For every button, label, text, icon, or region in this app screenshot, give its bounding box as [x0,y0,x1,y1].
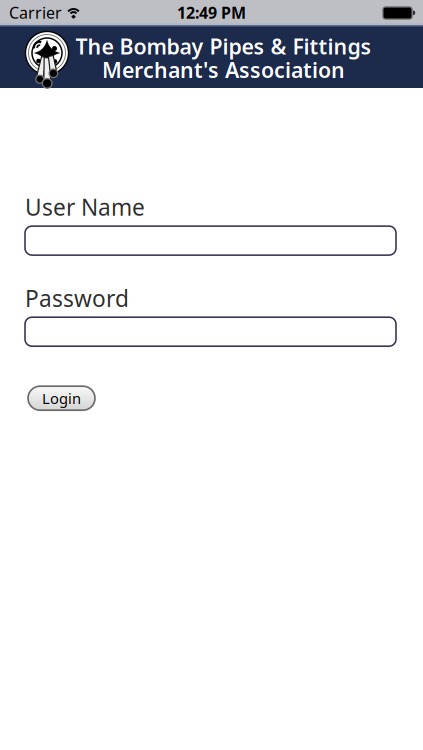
staticText: Carrier [9,2,62,23]
staticText: Password [25,283,129,313]
staticText: 12:49 PM [177,2,246,23]
staticText: Login [42,388,81,408]
staticText: User Name [25,192,145,222]
staticText: Merchant's Association [102,55,345,84]
button[interactable]: Login [28,386,95,410]
button[interactable]: User Name text field [25,226,396,255]
button[interactable]: Password text field [25,317,396,346]
staticText: The Bombay Pipes & Fittings [75,32,371,60]
